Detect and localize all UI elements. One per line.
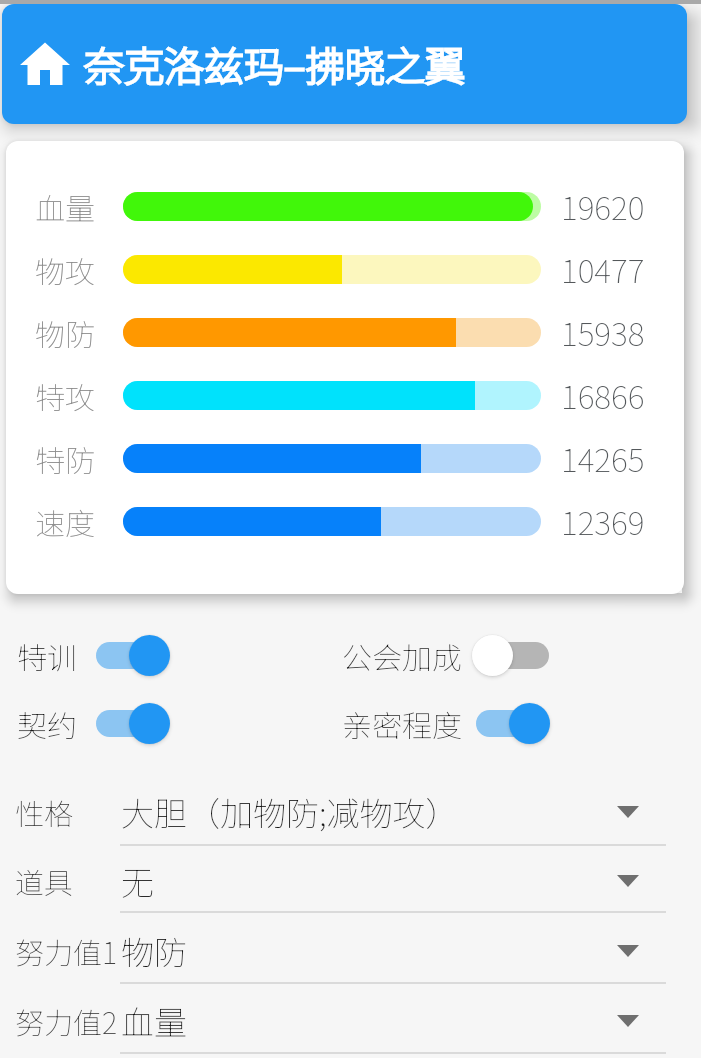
staticText: 无	[121, 857, 154, 905]
staticText: 性格	[15, 791, 74, 833]
staticText: 12369	[561, 498, 645, 544]
staticText: 奈克洛兹玛–拂晓之翼	[84, 35, 466, 93]
staticText: 公会加成	[342, 634, 462, 677]
staticText: 物攻	[35, 248, 95, 291]
staticText: 特防	[35, 437, 95, 480]
staticText: 努力值2	[15, 1000, 118, 1042]
staticText: 16866	[561, 372, 645, 418]
staticText: 血量	[121, 997, 187, 1045]
staticText: 奈克洛兹玛–拂晓之翼	[84, 35, 466, 93]
staticText: 特攻	[35, 374, 95, 417]
staticText: 道具	[15, 860, 74, 902]
staticText: 努力值1	[15, 930, 118, 972]
staticText: 亲密程度	[342, 702, 462, 745]
staticText: 10477	[561, 246, 645, 292]
staticText: 血量	[35, 185, 95, 228]
staticText: 14265	[561, 435, 645, 481]
staticText: 契约	[17, 702, 77, 745]
staticText: 物防	[121, 927, 187, 975]
staticText: 大胆（加物防;减物攻）	[121, 788, 459, 836]
staticText: 15938	[561, 309, 645, 355]
staticText: 19620	[561, 183, 645, 229]
staticText: 物防	[35, 311, 95, 354]
staticText: 特训	[17, 634, 77, 677]
staticText: 速度	[35, 500, 95, 543]
